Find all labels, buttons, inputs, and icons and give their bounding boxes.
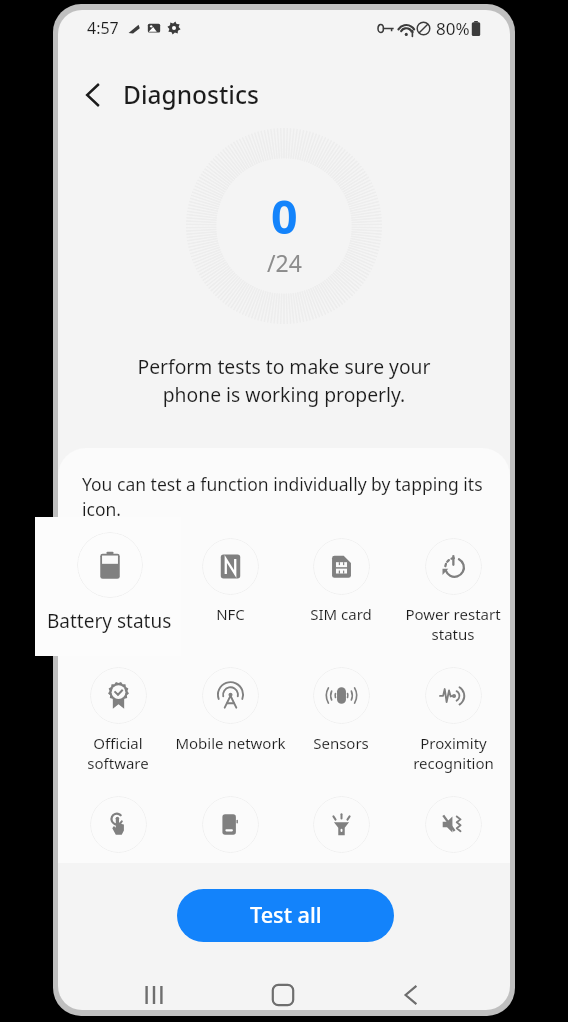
button[interactable]: Official software — [60, 661, 176, 779]
button[interactable]: SIM card — [283, 532, 399, 630]
staticText: Power restart status — [405, 604, 501, 644]
button[interactable] — [60, 790, 176, 859]
staticText: Perform tests to make sure your phone is… — [58, 353, 510, 408]
staticText: Battery status — [47, 608, 172, 634]
button[interactable] — [172, 790, 288, 859]
button[interactable] — [395, 790, 510, 859]
button[interactable]: Recents — [130, 971, 178, 1010]
staticText: Battery status — [69, 604, 168, 624]
button[interactable]: Sensors — [283, 661, 399, 759]
button[interactable]: Home — [259, 971, 307, 1010]
staticText: 0 — [271, 184, 298, 247]
staticText: You can test a function individually by … — [82, 472, 486, 521]
button[interactable]: Proximity recognition — [395, 661, 510, 779]
staticText: Mobile network — [175, 733, 286, 753]
staticText: Diagnostics — [123, 78, 259, 111]
staticText: Test all — [250, 900, 322, 930]
button[interactable]: NFC — [172, 532, 288, 630]
button[interactable]: Back — [387, 971, 435, 1010]
button[interactable]: Battery status — [35, 517, 181, 656]
staticText: Official software — [87, 733, 149, 773]
button[interactable]: Mobile network — [172, 661, 288, 759]
staticText: Proximity recognition — [413, 733, 494, 773]
button[interactable]: Power restart status — [395, 532, 510, 650]
button[interactable] — [283, 790, 399, 859]
staticText: 80% — [436, 17, 470, 40]
staticText: /24 — [267, 247, 302, 278]
staticText: SIM card — [310, 604, 372, 624]
staticText: Sensors — [313, 733, 369, 753]
staticText: 4:57 — [87, 17, 119, 39]
button[interactable]: Test all — [177, 889, 394, 942]
button[interactable]: Back — [72, 74, 114, 116]
button[interactable]: Battery status — [60, 532, 176, 630]
staticText: NFC — [216, 604, 245, 624]
